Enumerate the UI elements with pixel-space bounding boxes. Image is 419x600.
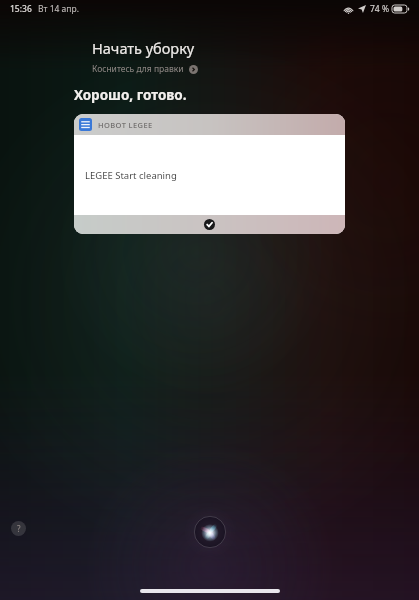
- button[interactable]: HOBOT LEGEE: [74, 114, 345, 234]
- button[interactable]: Help: [11, 521, 26, 536]
- button[interactable]: Done: [204, 219, 215, 230]
- staticText: 74 %: [370, 3, 389, 15]
- staticText: Начать уборку: [92, 38, 195, 58]
- staticText: 15:36: [10, 3, 32, 15]
- button[interactable]: Коснитесь для правки: [92, 63, 198, 75]
- staticText: Хорошо, готово.: [74, 86, 187, 104]
- staticText: LEGEE Start cleaning: [85, 169, 177, 182]
- staticText: Коснитесь для правки: [92, 63, 184, 75]
- staticText: Вт 14 апр.: [38, 3, 79, 15]
- staticText: ?: [17, 523, 21, 534]
- staticText: HOBOT LEGEE: [98, 120, 153, 130]
- button[interactable]: Siri: [193, 515, 227, 549]
